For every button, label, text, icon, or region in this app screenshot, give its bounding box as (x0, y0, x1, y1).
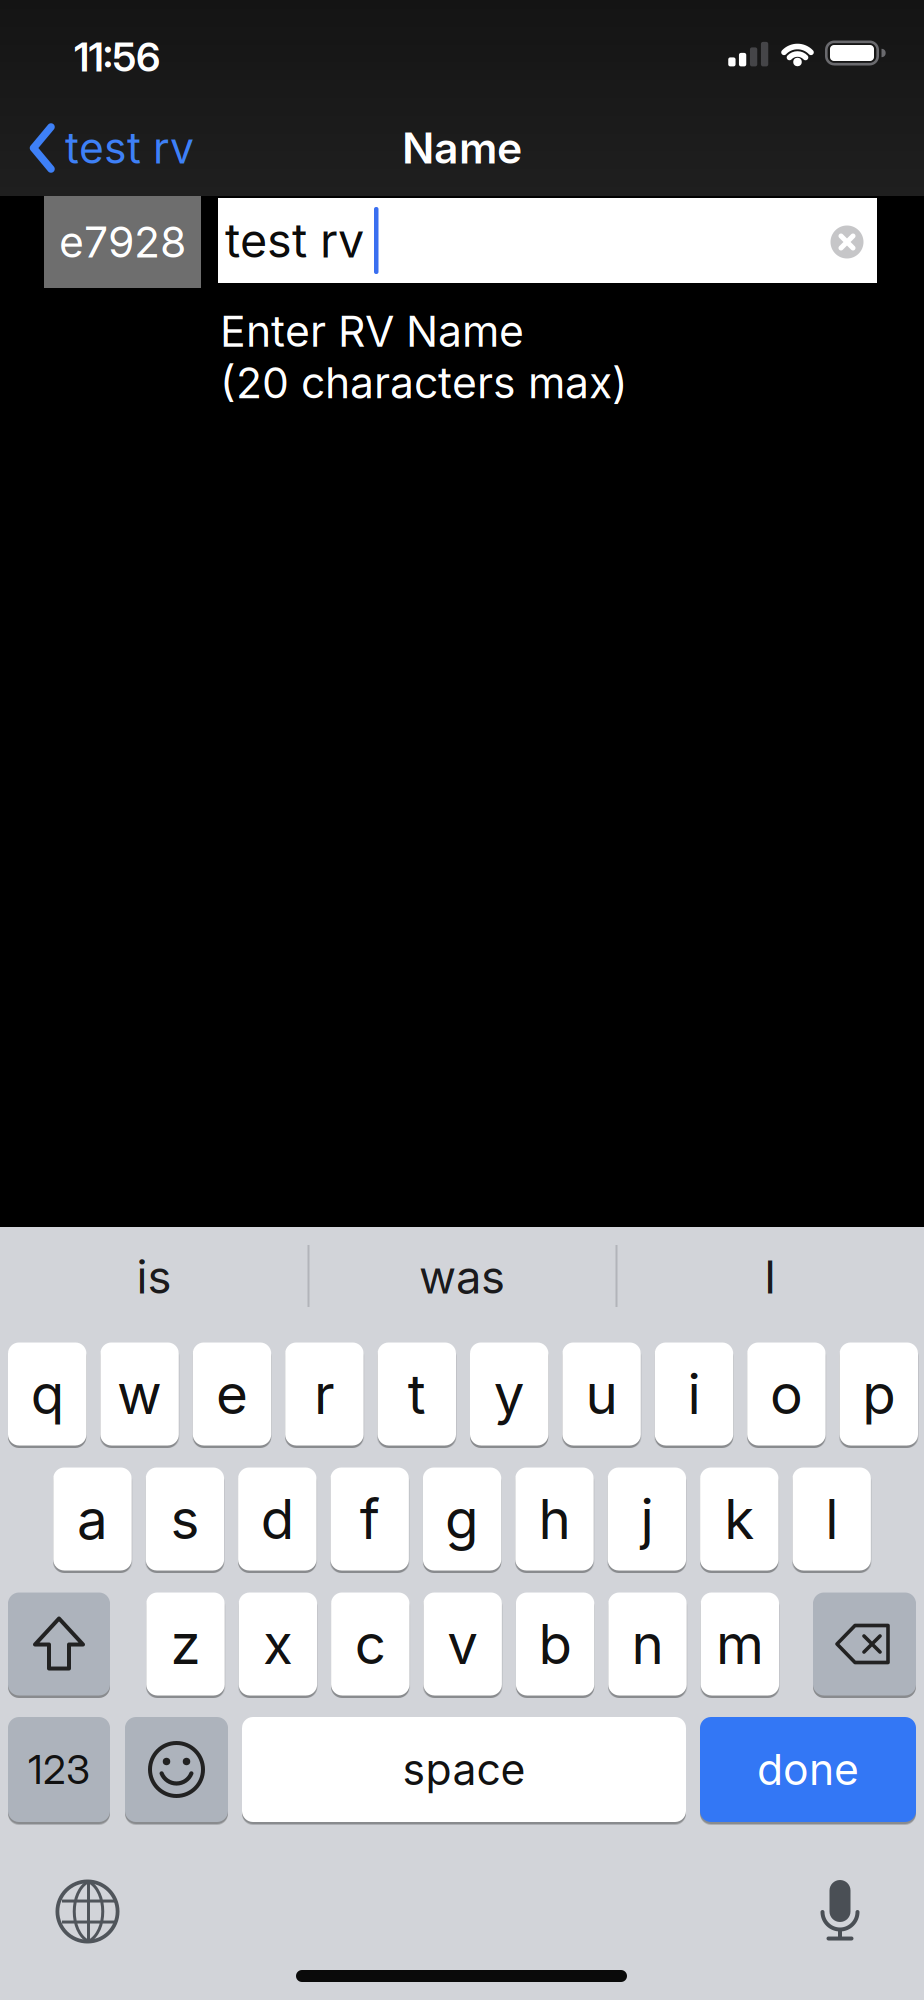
button[interactable]: was (317, 1233, 607, 1321)
button[interactable]: l (792, 1467, 871, 1570)
button[interactable]: m (701, 1592, 779, 1695)
staticText: space (402, 1744, 525, 1795)
button[interactable]: test rv (30, 113, 270, 183)
button[interactable]: h (515, 1467, 594, 1570)
button[interactable]: n (608, 1592, 687, 1695)
staticText: b (539, 1612, 572, 1676)
button[interactable]: a (53, 1467, 132, 1570)
staticText: x (263, 1612, 293, 1676)
staticText: c (355, 1612, 386, 1676)
button[interactable]: o (747, 1342, 826, 1445)
button[interactable]: done (700, 1717, 916, 1822)
button[interactable]: space (242, 1717, 686, 1822)
staticText: g (445, 1487, 479, 1551)
button[interactable]: d (238, 1467, 316, 1570)
button[interactable]: g (423, 1467, 501, 1570)
staticText: (20 characters max) (220, 357, 628, 408)
button[interactable]: s (146, 1467, 224, 1570)
staticText: m (716, 1612, 764, 1676)
staticText: t (408, 1362, 426, 1426)
staticText: is (136, 1250, 171, 1304)
button[interactable]: Shift (8, 1592, 110, 1695)
staticText: e (216, 1362, 248, 1426)
staticText: n (631, 1612, 663, 1676)
button[interactable]: e (193, 1342, 271, 1445)
staticText: p (862, 1362, 895, 1426)
button[interactable]: b (516, 1592, 594, 1695)
button[interactable]: t (378, 1342, 456, 1445)
staticText: f (360, 1487, 380, 1551)
button[interactable]: r (285, 1342, 364, 1445)
button[interactable]: y (470, 1342, 548, 1445)
button[interactable]: Delete (813, 1592, 916, 1695)
staticText: Enter RV Name (220, 306, 524, 356)
staticText: test rv (65, 123, 194, 173)
staticText: s (170, 1487, 199, 1551)
staticText: 123 (28, 1746, 90, 1793)
button[interactable]: v (423, 1592, 502, 1695)
staticText: done (757, 1744, 859, 1795)
button[interactable]: k (700, 1467, 778, 1570)
staticText: a (77, 1487, 108, 1551)
button[interactable]: Next keyboard (54, 1878, 120, 1944)
staticText: v (447, 1612, 478, 1676)
staticText: u (586, 1362, 618, 1426)
button[interactable]: q (8, 1342, 86, 1445)
staticText: d (261, 1487, 294, 1551)
staticText: j (640, 1487, 653, 1551)
staticText: z (170, 1612, 200, 1676)
staticText: Name (402, 123, 522, 173)
staticText: r (314, 1362, 335, 1426)
button[interactable]: w (100, 1342, 179, 1445)
button[interactable]: j (608, 1467, 686, 1570)
button[interactable]: z (146, 1592, 225, 1695)
staticText: o (770, 1362, 803, 1426)
button[interactable]: 123 (8, 1717, 110, 1822)
staticText: 11:56 (74, 33, 160, 81)
button[interactable]: p (840, 1342, 918, 1445)
staticText: was (419, 1250, 505, 1304)
button[interactable]: x (239, 1592, 317, 1695)
staticText: test rv (225, 213, 364, 268)
button[interactable]: u (562, 1342, 641, 1445)
staticText: h (538, 1487, 570, 1551)
button[interactable]: c (331, 1592, 409, 1695)
button[interactable]: f (330, 1467, 409, 1570)
button[interactable]: Clear text (830, 225, 863, 258)
button[interactable]: I (625, 1233, 915, 1321)
button[interactable]: i (655, 1342, 733, 1445)
staticText: l (825, 1487, 838, 1551)
staticText: e7928 (59, 217, 186, 267)
button[interactable]: Emoji (125, 1717, 228, 1822)
staticText: I (764, 1250, 776, 1304)
staticText: k (724, 1487, 754, 1551)
button[interactable]: Dictation (812, 1872, 868, 1942)
staticText: w (117, 1362, 162, 1426)
staticText: q (31, 1362, 64, 1426)
staticText: i (687, 1362, 700, 1426)
button[interactable]: is (9, 1233, 299, 1321)
button[interactable]: test rv (218, 198, 877, 283)
staticText: y (494, 1362, 525, 1426)
